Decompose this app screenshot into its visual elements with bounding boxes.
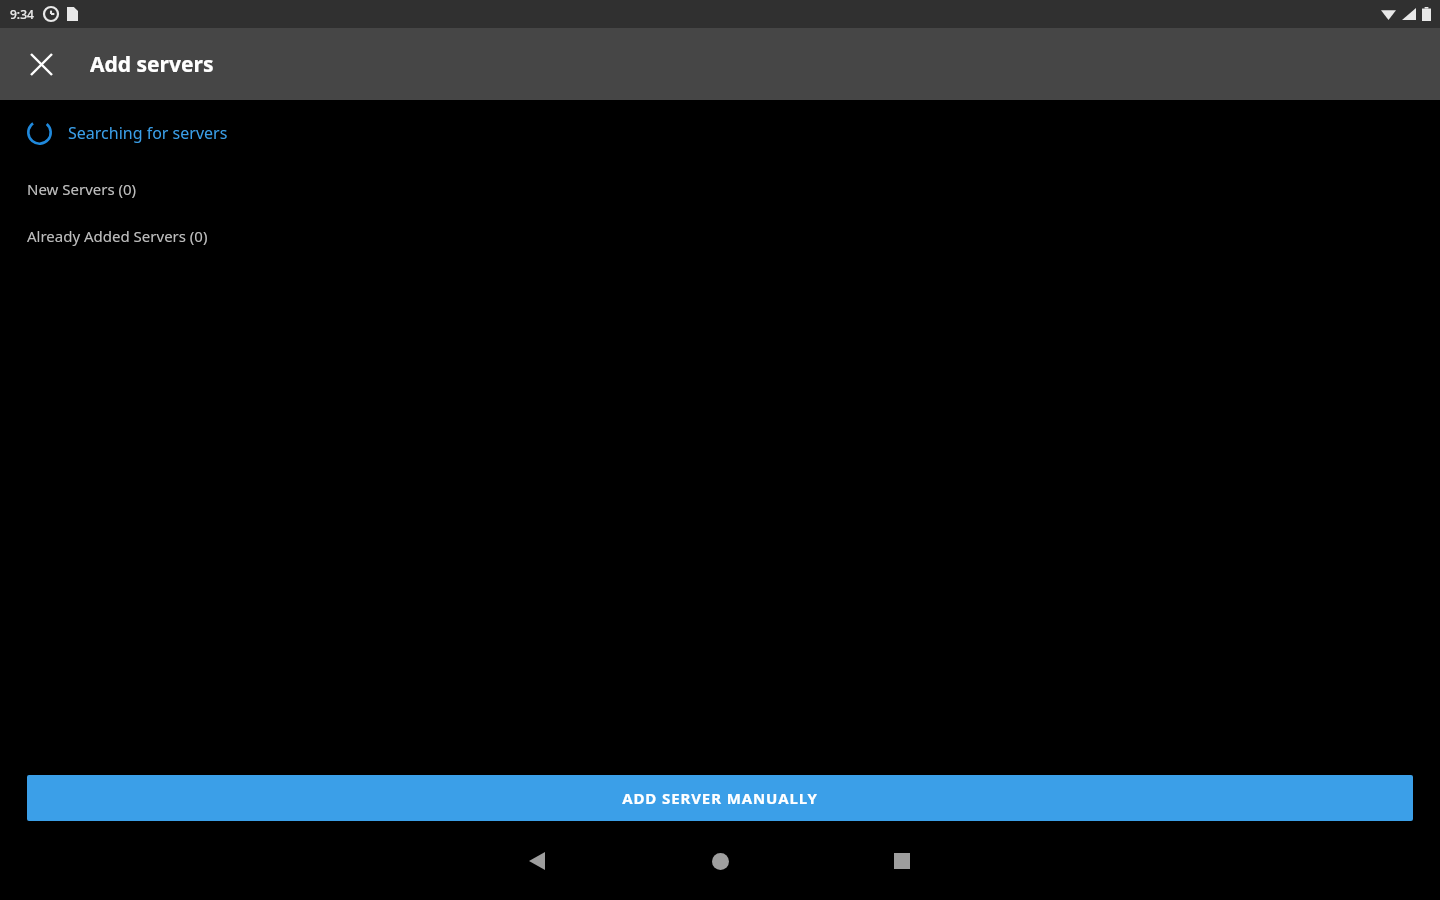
button[interactable]: Already Added Servers (0) [0,212,1440,259]
staticText: New Servers (0) [27,179,137,199]
button[interactable]: Back [505,829,569,893]
button[interactable]: Home [688,829,752,893]
staticText: Already Added Servers (0) [27,226,208,246]
button[interactable]: ADD SERVER MANUALLY [27,775,1413,821]
staticText: Add servers [90,50,214,79]
button[interactable]: Searching for servers [0,100,1440,165]
staticText: Searching for servers [68,122,228,144]
button[interactable]: New Servers (0) [0,165,1440,212]
button[interactable]: Recent apps [870,829,934,893]
button[interactable]: Close [17,40,65,88]
staticText: 9:34 [10,6,34,22]
staticText: ADD SERVER MANUALLY [622,788,818,808]
